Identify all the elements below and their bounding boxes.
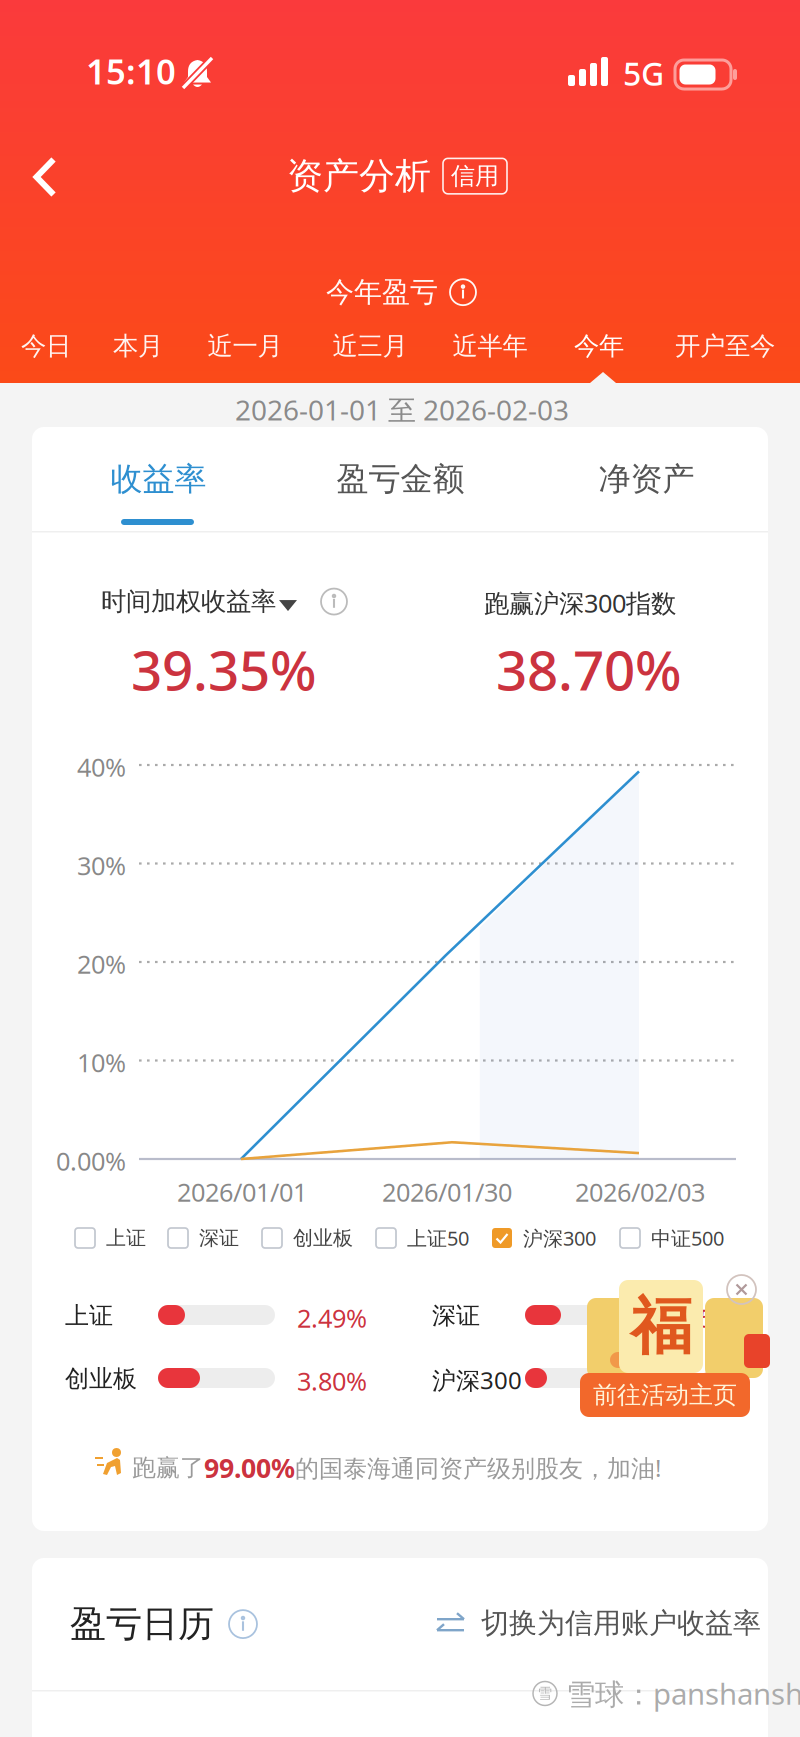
staticText: 信用 [451, 161, 499, 191]
staticText: 净资产 [598, 459, 694, 499]
staticText: 2.10% [664, 1364, 734, 1398]
staticText: 雪 [537, 1684, 552, 1702]
staticText: 2026/01/30 [382, 1175, 512, 1209]
staticText: 39.35% [131, 633, 317, 706]
staticText: 时间加权收益率 [101, 586, 276, 617]
button[interactable]: Close [727, 1275, 756, 1304]
staticText: 上证 [65, 1301, 113, 1330]
staticText: 雪球：panshanshan [566, 1674, 800, 1713]
staticText: 福 [630, 1289, 691, 1364]
button[interactable]: 近三月 [280, 322, 460, 370]
button[interactable]: 今年 [509, 322, 689, 370]
button[interactable]: 近一月 [155, 322, 335, 370]
staticText: 今日 [21, 330, 71, 361]
staticText: 38.70% [496, 633, 682, 706]
button[interactable]: 深证 [168, 1224, 239, 1252]
staticText: 资产分析 [287, 154, 431, 198]
staticText: 收益率 [110, 459, 206, 499]
staticText: 99.00% [204, 1450, 295, 1485]
staticText: 15:10 [86, 48, 176, 94]
button[interactable]: 上证 [75, 1224, 146, 1252]
staticText: 跑赢沪深300指数 [484, 586, 676, 620]
button[interactable]: 本月 [48, 322, 228, 370]
staticText: 20% [77, 947, 126, 981]
button[interactable]: 盈亏金额 [290, 427, 511, 531]
button[interactable]: 切换为信用账户收益率 [437, 1606, 761, 1640]
staticText: 深证 [199, 1226, 239, 1250]
button[interactable]: 今日 [0, 322, 136, 370]
staticText: 30% [77, 848, 126, 882]
button[interactable]: 中证500 [620, 1224, 724, 1252]
staticText: 上证50 [407, 1225, 469, 1251]
button[interactable]: 开户至今 [635, 322, 800, 370]
staticText: 3.35% [664, 1301, 734, 1335]
staticText: 本月 [113, 330, 163, 361]
staticText: 近一月 [207, 330, 282, 361]
staticText: 切换为信用账户收益率 [481, 1606, 761, 1640]
staticText: 沪深300 [432, 1364, 522, 1396]
staticText: 10% [77, 1045, 126, 1079]
button[interactable]: Back [9, 136, 81, 218]
staticText: 5G [623, 52, 664, 94]
staticText: 深证 [432, 1301, 480, 1330]
staticText: 2026-01-01 至 2026-02-03 [235, 391, 569, 428]
staticText: 创业板 [293, 1226, 353, 1250]
staticText: 近三月 [332, 330, 407, 361]
staticText: 0.00% [56, 1144, 126, 1178]
staticText: 3.80% [297, 1364, 367, 1398]
staticText: 2.49% [297, 1301, 367, 1335]
staticText: 开户至今 [675, 330, 775, 361]
staticText: 沪深300 [523, 1225, 596, 1251]
staticText: 中证500 [651, 1225, 724, 1251]
button[interactable]: 沪深300 [492, 1224, 596, 1252]
button[interactable]: 净资产 [536, 427, 757, 531]
staticText: 盈亏金额 [336, 459, 464, 499]
button[interactable]: 创业板 [262, 1224, 353, 1252]
staticText: 上证 [106, 1226, 146, 1250]
staticText: 2026/01/01 [177, 1175, 307, 1209]
button[interactable]: 收益率 [48, 427, 269, 531]
staticText: 今年 [574, 330, 624, 361]
staticText: 近半年 [452, 330, 527, 361]
staticText: 盈亏日历 [70, 1602, 214, 1646]
staticText: 今年盈亏 [326, 275, 438, 309]
staticText: 跑赢了 [132, 1453, 204, 1482]
staticText: 创业板 [65, 1364, 137, 1393]
button[interactable]: 近半年 [400, 322, 580, 370]
staticText: 40% [77, 750, 126, 784]
staticText: 前往活动主页 [593, 1380, 737, 1410]
staticText: 2026/02/03 [575, 1175, 705, 1209]
button[interactable]: 前往活动主页 [580, 1373, 750, 1417]
button[interactable]: 上证50 [376, 1224, 469, 1252]
staticText: 的国泰海通同资产级别股友，加油! [295, 1452, 661, 1484]
